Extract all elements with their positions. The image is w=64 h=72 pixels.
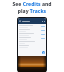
button[interactable]: Play [42, 51, 45, 54]
button[interactable] [18, 56, 46, 72]
staticText: See Credits and [0, 1, 64, 8]
button[interactable] [19, 25, 45, 28]
button[interactable] [19, 45, 45, 48]
button[interactable] [19, 33, 45, 36]
staticText: play Tracks [0, 8, 64, 15]
button[interactable] [19, 29, 45, 32]
button[interactable]: Navigation menu [18, 18, 46, 24]
button[interactable] [19, 41, 45, 44]
other: Navigation menu [19, 20, 21, 22]
button[interactable] [19, 37, 45, 40]
